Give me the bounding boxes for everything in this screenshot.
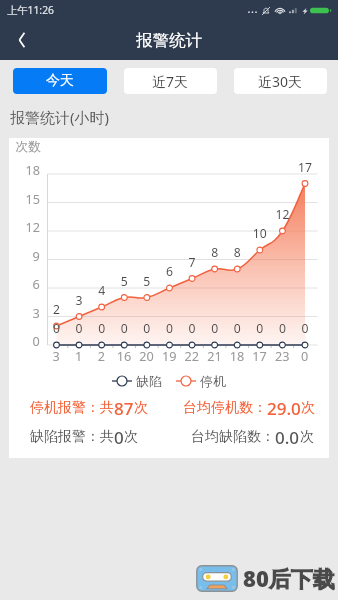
staticText: 停机报警：共 [30, 399, 114, 417]
staticText: 0 [114, 426, 124, 446]
staticText: 80后下载 [243, 563, 335, 593]
staticText: 报警统计(小时) [10, 107, 110, 127]
button[interactable]: Back [8, 25, 38, 55]
button[interactable]: 近7天 [124, 68, 217, 94]
staticText: 近30天 [258, 72, 303, 91]
staticText: 87 [114, 397, 134, 417]
button[interactable]: 近30天 [234, 68, 327, 94]
staticText: 次 [124, 428, 138, 446]
staticText: 缺陷 [136, 373, 162, 389]
staticText: 次 [301, 399, 315, 417]
staticText: 上午11:26 [7, 3, 54, 17]
staticText: 0.0 [275, 426, 300, 446]
staticText: 台均停机数： [183, 399, 267, 417]
staticText: 报警统计 [136, 30, 202, 51]
staticText: 今天 [46, 72, 74, 90]
staticText: 29.0 [267, 397, 301, 417]
staticText: 台均缺陷数： [191, 428, 275, 446]
staticText: 停机 [200, 373, 226, 389]
staticText: 近7天 [152, 72, 189, 91]
staticText: 次 [134, 399, 148, 417]
staticText: 次 [300, 428, 314, 446]
button[interactable]: 今天 [13, 68, 107, 94]
staticText: 缺陷报警：共 [30, 428, 114, 446]
